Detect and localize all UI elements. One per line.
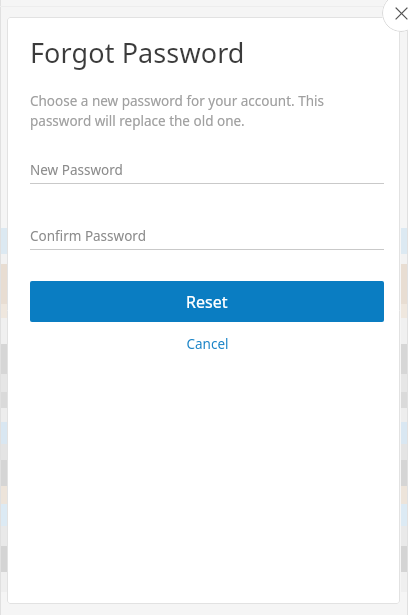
staticText: Confirm Password — [30, 227, 146, 245]
button[interactable]: Close — [382, 0, 408, 32]
staticText: Choose a new password for your account. … — [30, 92, 324, 130]
button[interactable]: Reset — [30, 281, 384, 322]
staticText: Cancel — [186, 335, 229, 353]
staticText: Reset — [186, 291, 228, 313]
staticText: Forgot Password — [30, 34, 245, 71]
button[interactable]: New Password — [30, 161, 384, 184]
staticText: New Password — [30, 161, 123, 179]
button[interactable]: Confirm Password — [30, 227, 384, 250]
button[interactable]: Cancel — [30, 331, 384, 357]
